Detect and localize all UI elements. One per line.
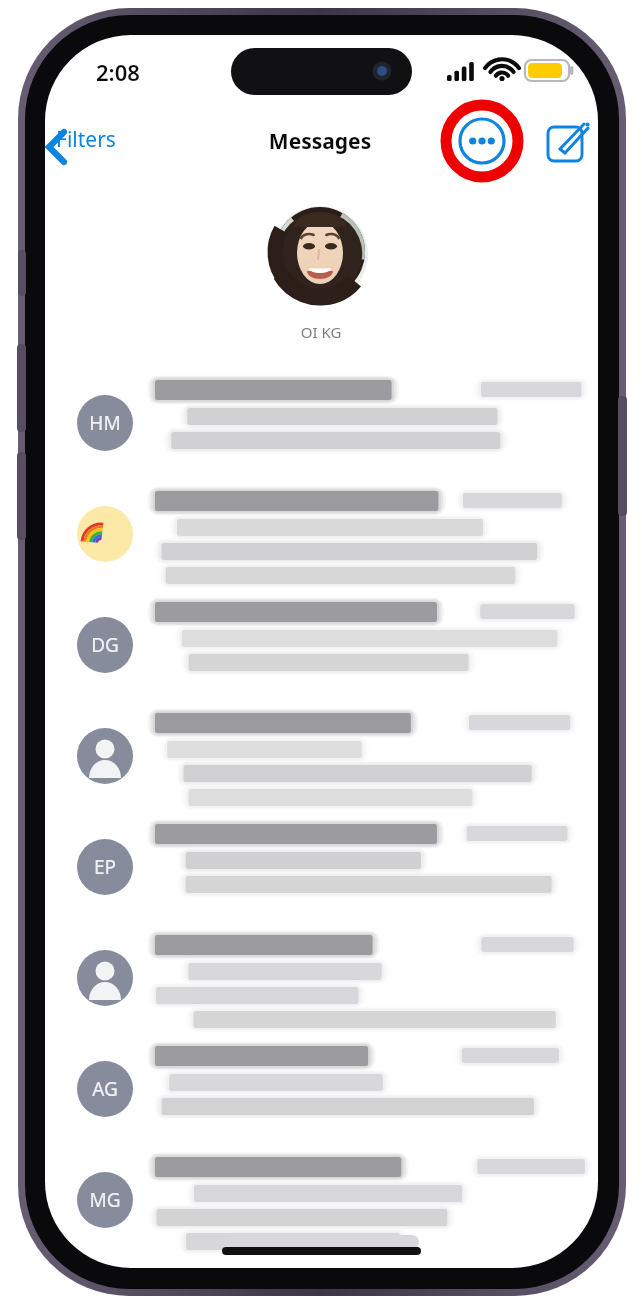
staticText: EP <box>77 854 133 880</box>
staticText: MG <box>77 1187 133 1213</box>
staticText: Messages <box>250 127 390 157</box>
button[interactable]: Conversation 6 <box>45 923 598 1034</box>
staticText: DG <box>77 632 133 658</box>
button[interactable]: Filters <box>20 118 130 166</box>
staticText: Filters <box>56 125 116 154</box>
staticText: HM <box>77 410 133 436</box>
button[interactable]: More options <box>441 100 523 182</box>
button[interactable]: Compose new message <box>540 117 592 169</box>
button[interactable]: Conversation 2 <box>45 479 598 590</box>
staticText: OI KG <box>268 322 374 348</box>
staticText: AG <box>77 1076 133 1102</box>
button[interactable]: Conversation 7 <box>45 1034 598 1145</box>
button[interactable]: Conversation 3 <box>45 590 598 701</box>
button[interactable]: Conversation 4 <box>45 701 598 812</box>
button[interactable]: Conversation 1 <box>45 368 598 479</box>
button[interactable]: Conversation 8 <box>45 1145 598 1256</box>
button[interactable]: Conversation 5 <box>45 812 598 923</box>
button[interactable]: OI KG <box>268 192 374 348</box>
staticText: 2:08 <box>96 57 140 87</box>
